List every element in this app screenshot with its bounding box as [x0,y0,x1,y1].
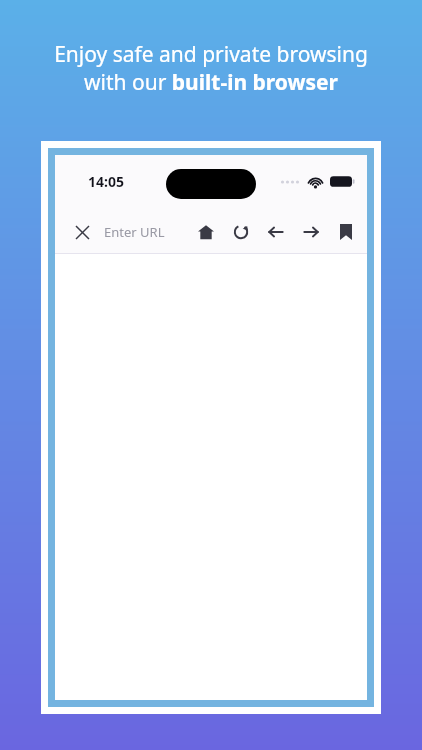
staticText: 14:05 [88,172,124,191]
button[interactable]: Reload [223,213,258,251]
button[interactable]: Bookmark [328,213,363,251]
button[interactable]: Forward [293,213,328,251]
button[interactable]: Enter URL [104,215,199,249]
button[interactable]: Back [258,213,293,251]
staticText: Enjoy safe and private browsing with our… [18,40,404,96]
button[interactable]: Home [188,213,223,251]
button[interactable]: Close [65,215,99,249]
staticText: Enter URL [104,223,165,241]
